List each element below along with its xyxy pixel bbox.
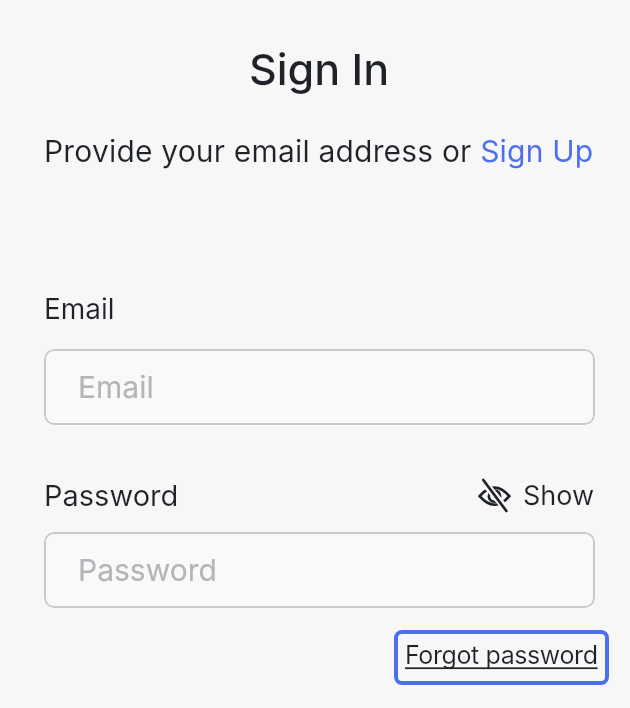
button[interactable]: Password [44, 532, 595, 608]
button[interactable]: Forgot password [394, 630, 609, 685]
button[interactable]: Provide your email address or Sign Up [44, 133, 594, 169]
staticText: Email [78, 369, 154, 405]
button[interactable]: Email [44, 349, 595, 425]
staticText: Sign In [249, 43, 390, 95]
staticText: Forgot password [405, 640, 598, 670]
staticText: Password [44, 478, 179, 513]
button[interactable]: Show [478, 479, 595, 512]
staticText: Email [44, 292, 115, 326]
staticText: Show [523, 479, 595, 512]
staticText: Password [78, 552, 217, 588]
